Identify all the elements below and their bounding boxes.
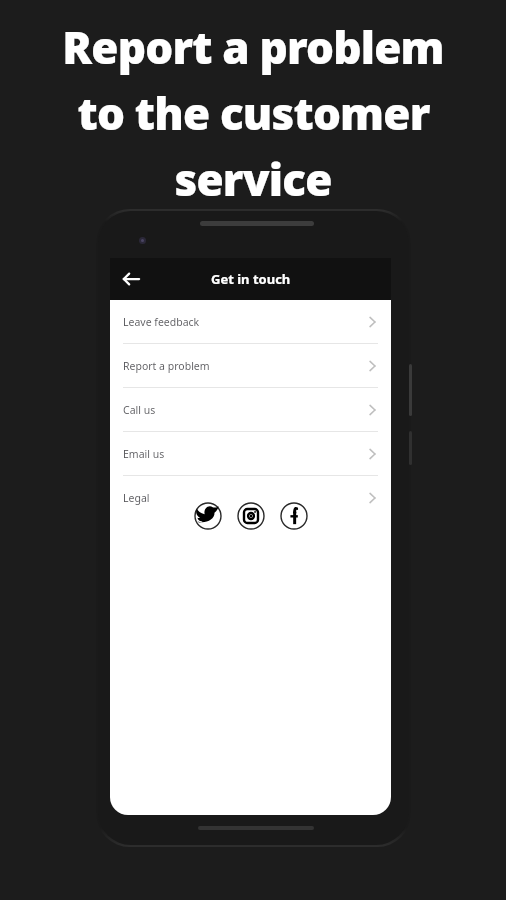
staticText: service	[174, 149, 332, 209]
button[interactable]: Facebook	[280, 502, 308, 530]
staticText: Get in touch	[211, 270, 291, 288]
button[interactable]: Leave feedback	[110, 300, 391, 343]
staticText: Call us	[123, 403, 156, 417]
staticText: Email us	[123, 447, 165, 461]
staticText: Report a problem	[123, 359, 210, 373]
button[interactable]: Report a problem	[110, 344, 391, 387]
button[interactable]: Call us	[110, 388, 391, 431]
button[interactable]: Instagram	[237, 502, 265, 530]
button[interactable]: Legal	[110, 476, 391, 519]
button[interactable]: Email us	[110, 432, 391, 475]
staticText: Legal	[123, 491, 150, 505]
staticText: to the customer	[77, 83, 430, 143]
staticText: Report a problem	[62, 17, 444, 77]
button[interactable]: Back	[114, 262, 148, 296]
button[interactable]: Twitter	[194, 502, 222, 530]
staticText: Leave feedback	[123, 315, 200, 329]
